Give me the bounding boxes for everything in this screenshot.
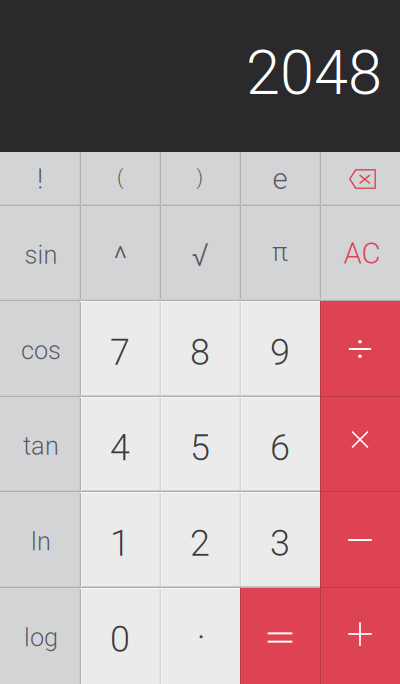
staticText: ! bbox=[37, 163, 43, 195]
staticText: log bbox=[24, 623, 58, 652]
button[interactable]: ! bbox=[0, 152, 80, 206]
button[interactable]: 5 bbox=[160, 397, 240, 492]
staticText: √ bbox=[191, 236, 208, 274]
staticText: 9 bbox=[270, 331, 290, 374]
button[interactable]: Add bbox=[320, 588, 400, 684]
staticText: 8 bbox=[190, 331, 210, 374]
button[interactable]: e bbox=[240, 152, 320, 206]
staticText: 4 bbox=[110, 427, 130, 469]
button[interactable]: Delete bbox=[320, 152, 400, 206]
button[interactable]: ) bbox=[160, 152, 240, 206]
button[interactable]: sin bbox=[0, 206, 80, 301]
button[interactable]: ( bbox=[80, 152, 160, 206]
staticText: e bbox=[272, 162, 287, 196]
staticText: ln bbox=[31, 527, 51, 556]
staticText: ( bbox=[117, 166, 123, 189]
button[interactable]: 1 bbox=[80, 492, 160, 588]
staticText: ) bbox=[196, 166, 203, 189]
staticText: 2 bbox=[190, 522, 210, 565]
staticText: 5 bbox=[190, 427, 210, 469]
button[interactable]: 9 bbox=[240, 301, 320, 397]
button[interactable]: 3 bbox=[240, 492, 320, 588]
staticText: 0 bbox=[110, 618, 130, 661]
button[interactable]: √ bbox=[160, 206, 240, 301]
button[interactable]: 8 bbox=[160, 301, 240, 397]
staticText: 2048 bbox=[246, 37, 382, 109]
button[interactable]: 6 bbox=[240, 397, 320, 492]
button[interactable]: AC bbox=[320, 206, 400, 301]
staticText: . bbox=[197, 605, 206, 647]
button[interactable]: Subtract bbox=[320, 492, 400, 588]
button[interactable]: Multiply bbox=[320, 397, 400, 492]
staticText: 7 bbox=[110, 331, 130, 374]
button[interactable]: 2 bbox=[160, 492, 240, 588]
button[interactable]: Divide bbox=[320, 301, 400, 397]
staticText: 6 bbox=[270, 427, 290, 469]
button[interactable]: ln bbox=[0, 492, 80, 588]
staticText: tan bbox=[23, 431, 59, 461]
button[interactable]: log bbox=[0, 588, 80, 684]
staticText: 3 bbox=[270, 522, 290, 565]
button[interactable]: cos bbox=[0, 301, 80, 397]
button[interactable]: 4 bbox=[80, 397, 160, 492]
button[interactable]: tan bbox=[0, 397, 80, 492]
button[interactable]: 0 bbox=[80, 588, 160, 684]
staticText: π bbox=[272, 236, 288, 268]
button[interactable]: ^ bbox=[80, 206, 160, 301]
button[interactable]: . bbox=[160, 588, 240, 684]
staticText: AC bbox=[343, 236, 380, 271]
staticText: cos bbox=[21, 336, 61, 365]
button[interactable]: 7 bbox=[80, 301, 160, 397]
button[interactable]: Equals bbox=[240, 588, 320, 684]
staticText: sin bbox=[24, 240, 57, 270]
button[interactable]: π bbox=[240, 206, 320, 301]
staticText: 1 bbox=[110, 522, 130, 565]
staticText: ^ bbox=[113, 239, 127, 278]
